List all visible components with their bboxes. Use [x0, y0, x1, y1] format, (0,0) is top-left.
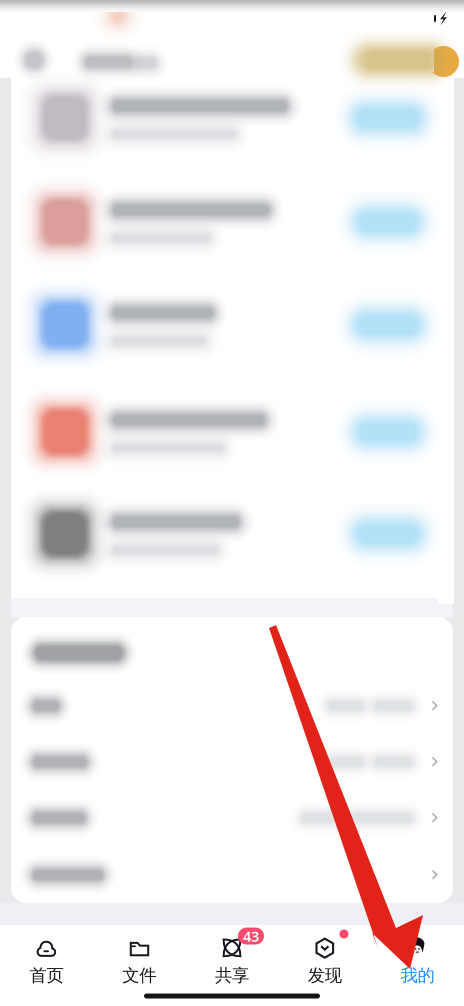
button[interactable]: 共享 [186, 929, 278, 993]
button[interactable] [0, 0, 464, 1006]
button[interactable] [0, 0, 464, 1006]
staticText: 共享 [215, 965, 249, 986]
staticText: 文件 [122, 965, 156, 986]
button[interactable]: 43 new shares [238, 926, 264, 946]
staticText: 首页 [29, 965, 63, 986]
staticText: 43 [243, 926, 259, 946]
button[interactable] [0, 0, 464, 1006]
button[interactable]: 文件 [93, 929, 186, 993]
staticText: 发现 [308, 965, 342, 986]
button[interactable] [0, 0, 464, 1006]
button[interactable] [0, 0, 464, 1006]
button[interactable] [0, 0, 464, 1006]
button[interactable] [0, 0, 464, 1006]
button[interactable] [0, 0, 464, 1006]
button[interactable] [0, 0, 464, 1006]
button[interactable]: 首页 [0, 929, 93, 993]
button[interactable]: 我的 [371, 929, 464, 993]
button[interactable]: 发现 [278, 929, 371, 993]
staticText: 我的 [401, 965, 435, 986]
